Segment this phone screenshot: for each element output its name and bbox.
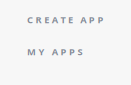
button[interactable]: CREATE APP — [27, 13, 131, 26]
staticText: CREATE APP — [27, 13, 103, 26]
button[interactable]: MY APPS — [27, 45, 131, 58]
staticText: MY APPS — [27, 45, 83, 58]
